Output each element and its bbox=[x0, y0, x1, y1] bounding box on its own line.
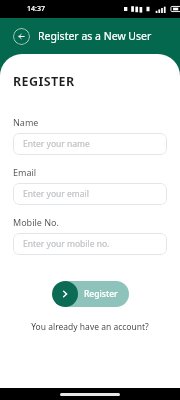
button[interactable]: Enter your email bbox=[13, 183, 167, 205]
button[interactable]: Enter your mobile no. bbox=[13, 233, 167, 255]
staticText: Enter your mobile no. bbox=[23, 238, 110, 250]
staticText: Enter your email bbox=[23, 188, 89, 200]
staticText: Mobile No. bbox=[13, 216, 59, 228]
button[interactable]: Back bbox=[13, 28, 30, 45]
staticText: Register bbox=[84, 288, 118, 300]
button[interactable]: Register bbox=[52, 281, 129, 307]
staticText: Enter your name bbox=[23, 138, 90, 150]
staticText: REGISTER bbox=[13, 73, 75, 90]
staticText: 14:37 bbox=[27, 4, 45, 14]
staticText: Name bbox=[13, 116, 39, 128]
button[interactable]: You already have an account? bbox=[13, 321, 167, 333]
staticText: You already have an account? bbox=[31, 321, 149, 333]
button[interactable]: Enter your name bbox=[13, 133, 167, 155]
staticText: Register as a New User bbox=[38, 29, 152, 43]
staticText: Email bbox=[13, 166, 37, 178]
